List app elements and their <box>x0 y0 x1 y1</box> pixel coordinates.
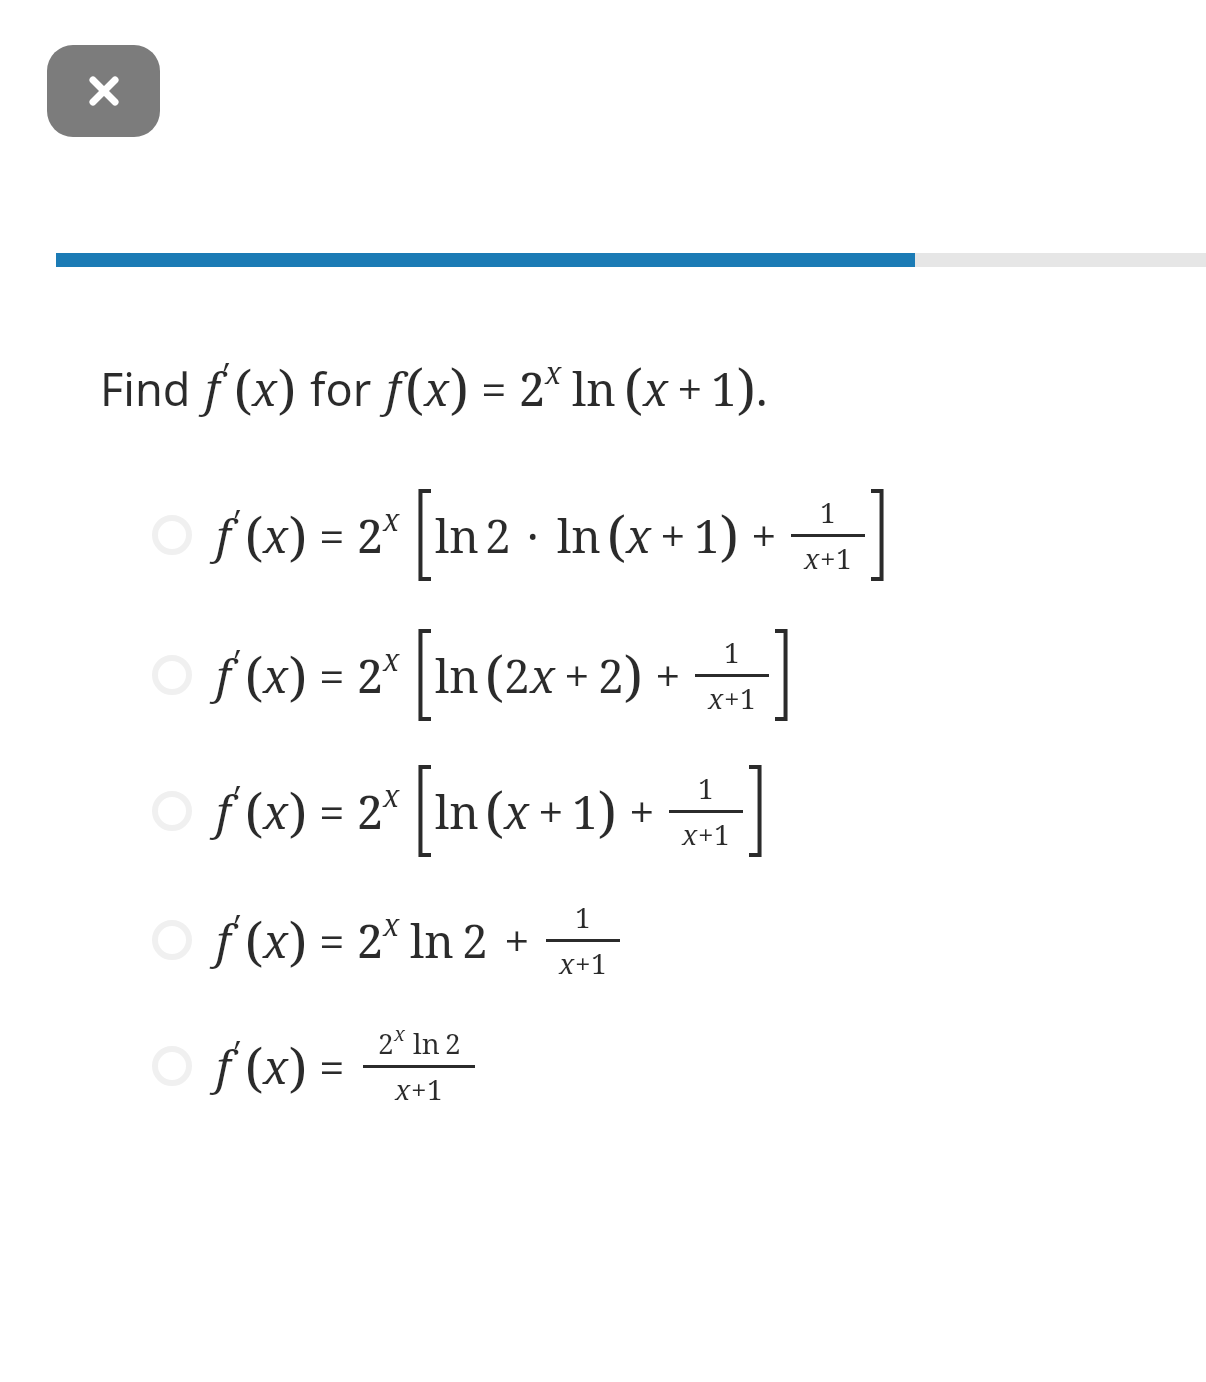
staticText: x <box>383 904 400 945</box>
staticText: ) <box>720 498 739 572</box>
staticText: x <box>682 815 698 853</box>
staticText: f <box>216 504 231 567</box>
staticText: f <box>386 357 401 420</box>
staticText: x <box>530 644 556 707</box>
staticText: 1 <box>591 944 607 982</box>
staticText: = <box>319 504 345 567</box>
button[interactable]: f <box>0 605 1206 745</box>
staticText: + <box>504 909 530 972</box>
staticText: 2 <box>504 644 530 707</box>
staticText: ) <box>624 638 643 712</box>
button[interactable]: f <box>0 465 1206 605</box>
staticText: f <box>216 1035 231 1098</box>
staticText: x <box>504 780 530 843</box>
staticText: + <box>564 644 590 707</box>
staticText: ( <box>405 351 424 425</box>
staticText: 2 <box>357 909 383 972</box>
staticText: ( <box>624 351 643 425</box>
staticText: f <box>205 357 220 420</box>
staticText: ln <box>435 644 479 707</box>
staticText: ( <box>245 776 263 847</box>
staticText: ) <box>278 353 296 424</box>
staticText: 2 <box>519 357 545 420</box>
staticText: ) <box>289 905 307 976</box>
staticText: ′ <box>231 499 239 545</box>
staticText: ) <box>450 351 469 425</box>
staticText: ) <box>598 774 617 848</box>
staticText: x <box>263 780 289 843</box>
staticText: + <box>677 357 703 420</box>
button[interactable]: f <box>0 745 1206 877</box>
staticText: ln <box>413 1024 440 1062</box>
staticText: 1 <box>714 815 730 853</box>
staticText: ( <box>234 353 252 424</box>
staticText: x <box>383 639 400 680</box>
staticText: x <box>626 504 652 567</box>
staticText: x <box>559 944 575 982</box>
staticText: ) <box>289 640 307 711</box>
staticText: f <box>216 909 231 972</box>
staticText: x <box>395 1070 411 1108</box>
staticText: 1 <box>724 633 740 671</box>
staticText: x <box>383 775 400 816</box>
staticText: ln <box>435 780 479 843</box>
staticText: x <box>545 352 562 393</box>
staticText: ) <box>289 776 307 847</box>
staticText: x <box>263 644 289 707</box>
staticText: ′ <box>231 904 239 950</box>
staticText: 2 <box>378 1024 394 1062</box>
staticText: 2 <box>598 644 624 707</box>
staticText: 1 <box>820 493 836 531</box>
button[interactable]: f <box>0 877 1206 1003</box>
staticText: + <box>411 1070 427 1108</box>
staticText: x <box>708 679 724 717</box>
staticText: ( <box>485 638 504 712</box>
staticText: ( <box>245 500 263 571</box>
staticText: 1 <box>836 539 852 577</box>
staticText: ′ <box>231 1030 239 1076</box>
staticText: ) <box>737 351 756 425</box>
button[interactable]: f <box>0 1003 1206 1129</box>
staticText: ′ <box>231 639 239 685</box>
staticText: f <box>216 644 231 707</box>
staticText: 1 <box>575 898 591 936</box>
staticText: x <box>394 1020 405 1047</box>
staticText: f <box>216 780 231 843</box>
staticText: x <box>804 539 820 577</box>
staticText: 1 <box>740 679 756 717</box>
staticText: + <box>660 504 686 567</box>
staticText: 2 <box>357 780 383 843</box>
staticText: x <box>252 357 278 420</box>
staticText: + <box>820 539 836 577</box>
staticText: ) <box>289 500 307 571</box>
staticText: = <box>319 644 345 707</box>
staticText: . <box>756 357 768 420</box>
staticText: Find <box>100 358 191 419</box>
staticText: ( <box>485 774 504 848</box>
staticText: 1 <box>427 1070 443 1108</box>
staticText: ( <box>245 905 263 976</box>
staticText: + <box>575 944 591 982</box>
staticText: x <box>383 499 400 540</box>
staticText: ) <box>289 1031 307 1102</box>
staticText: 1 <box>711 357 737 420</box>
staticText: ln <box>557 504 601 567</box>
staticText: + <box>698 815 714 853</box>
staticText: x <box>263 504 289 567</box>
staticText: 1 <box>698 769 714 807</box>
staticText: + <box>751 504 777 567</box>
staticText: 2 <box>357 504 383 567</box>
staticText: = <box>319 1035 345 1098</box>
staticText: ′ <box>220 352 228 398</box>
button[interactable]: Close <box>47 45 160 137</box>
staticText: 2 <box>462 909 488 972</box>
staticText: 2 <box>445 1024 461 1062</box>
staticText: · <box>527 504 539 567</box>
staticText: 2 <box>485 504 511 567</box>
staticText: + <box>724 679 740 717</box>
staticText: 1 <box>694 504 720 567</box>
staticText: = <box>481 357 507 420</box>
staticText: ( <box>607 498 626 572</box>
staticText: = <box>319 780 345 843</box>
staticText: for <box>310 358 372 419</box>
